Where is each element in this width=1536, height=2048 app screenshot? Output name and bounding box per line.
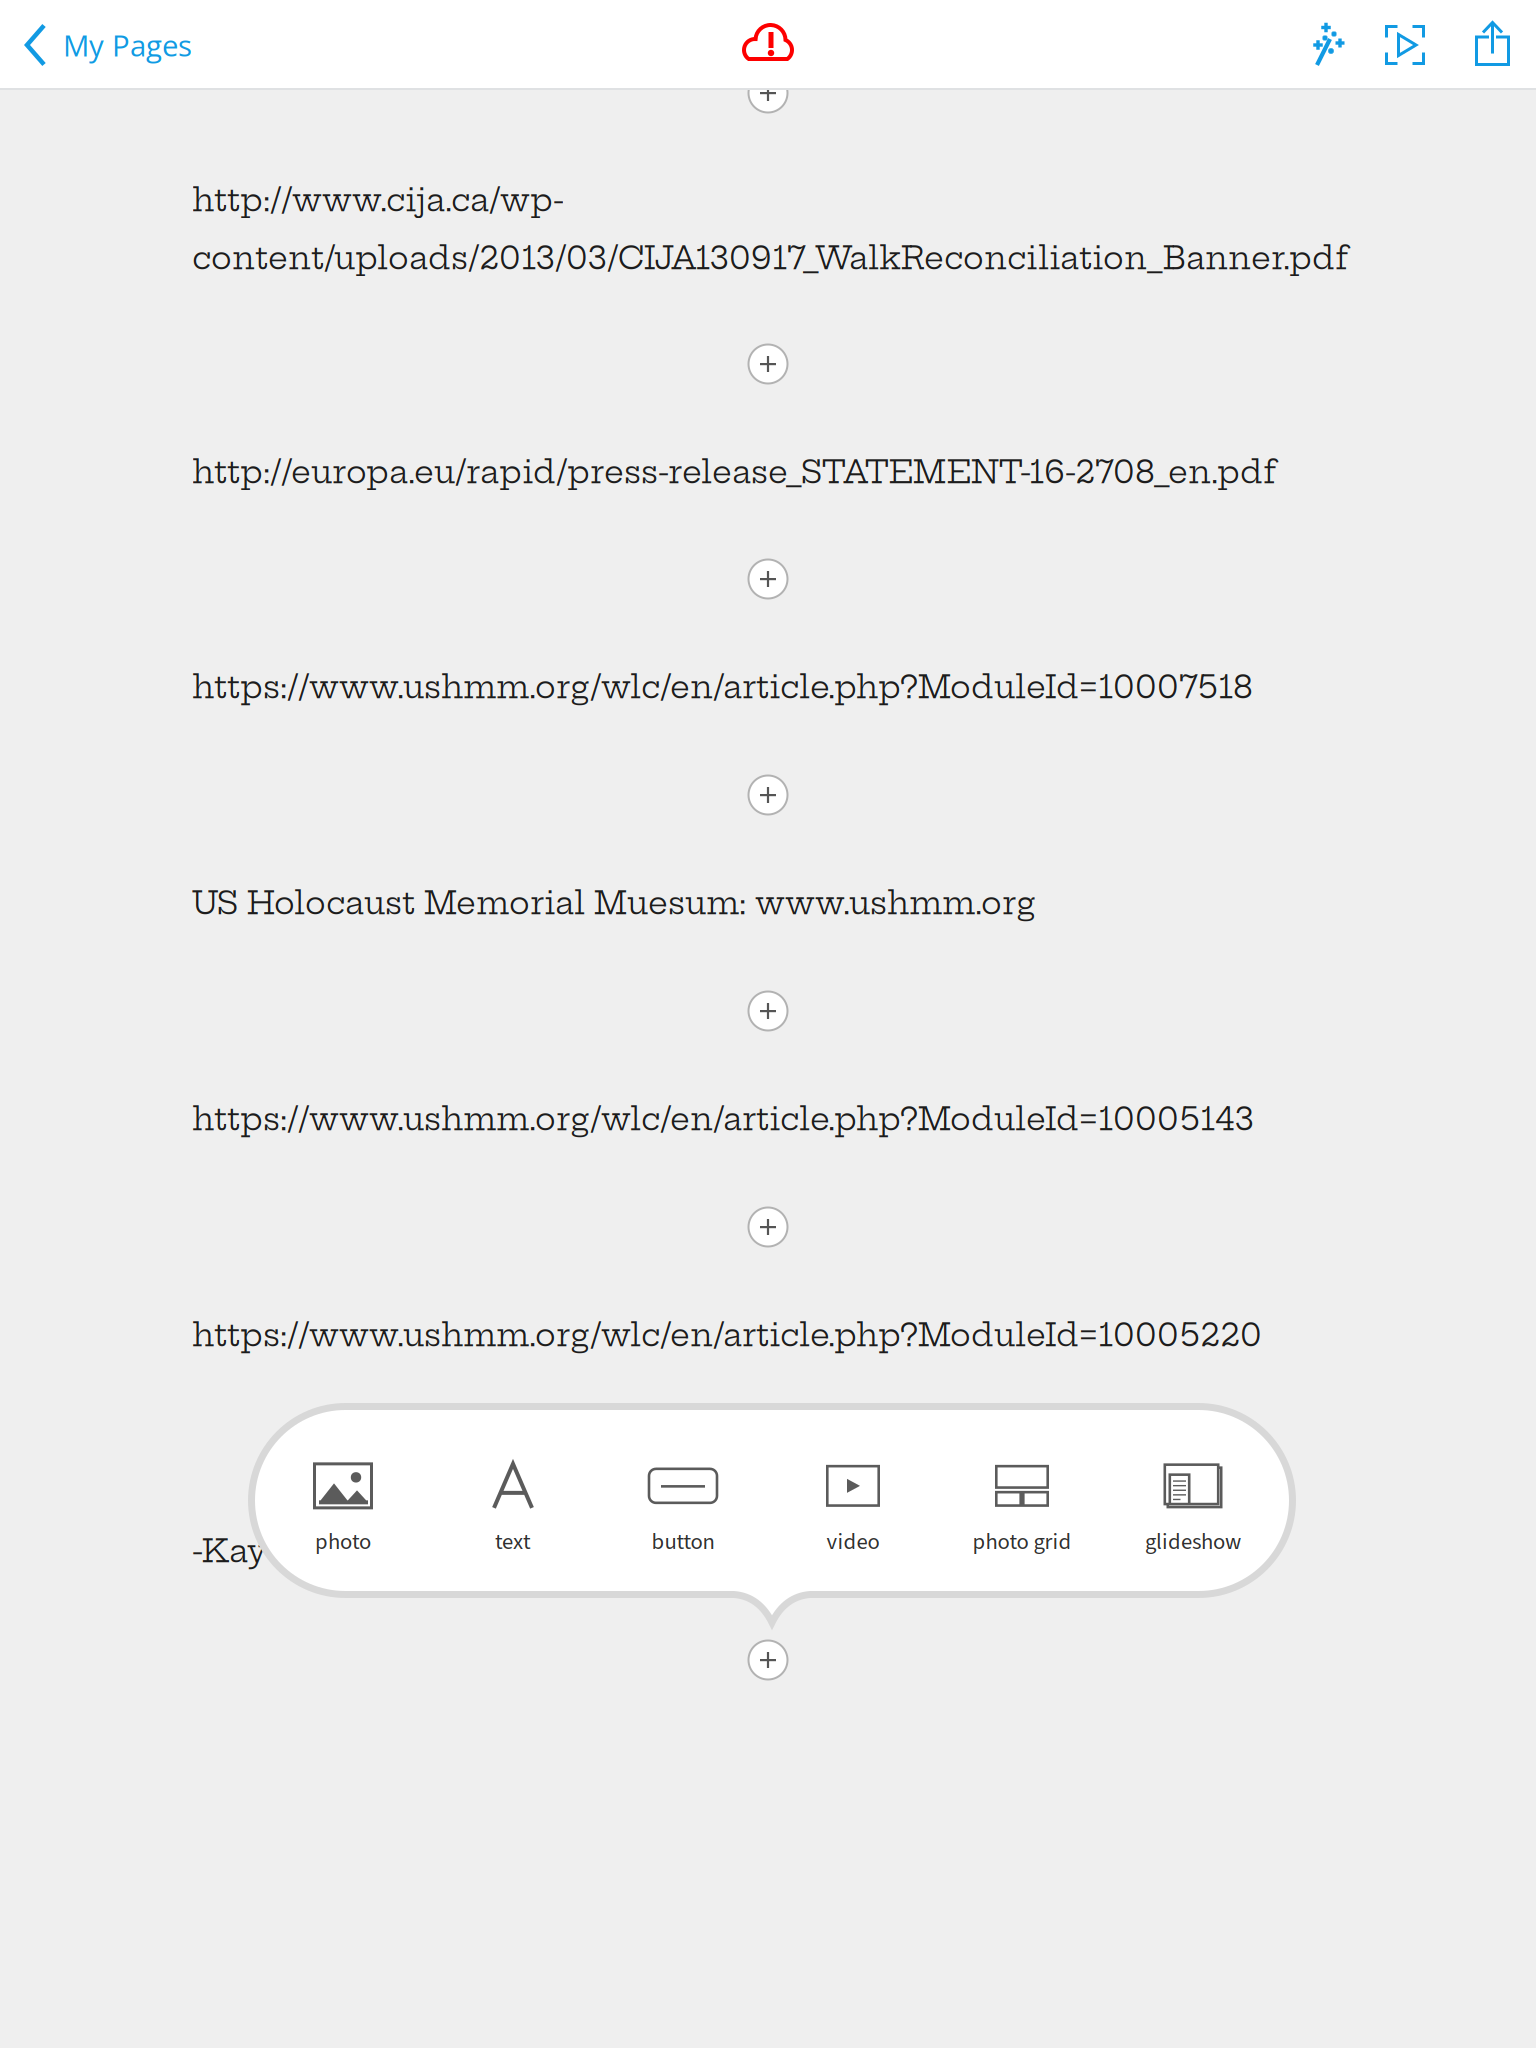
button[interactable]: Insert block [748, 344, 787, 383]
button[interactable]: video [778, 1453, 928, 1563]
button[interactable]: text [438, 1453, 588, 1563]
staticText: US Holocaust Memorial Muesum: www.ushmm.… [192, 884, 1035, 922]
button[interactable]: My Pages [24, 0, 254, 90]
button[interactable]: Preview [1366, 3, 1444, 87]
staticText: http://www.cija.ca/wp- [192, 181, 564, 219]
button[interactable]: Share [1453, 0, 1531, 84]
button[interactable]: Insert block [748, 991, 787, 1030]
button[interactable]: button [608, 1453, 758, 1563]
staticText: https://www.ushmm.org/wlc/en/article.php… [192, 1316, 1262, 1354]
button[interactable]: Insert block [748, 73, 787, 112]
staticText: https://www.ushmm.org/wlc/en/article.php… [192, 1100, 1254, 1138]
button[interactable]: Theme [1281, 3, 1359, 87]
staticText: https://www.ushmm.org/wlc/en/article.php… [192, 668, 1253, 706]
staticText: My Pages [63, 25, 192, 65]
button[interactable]: glideshow [1118, 1453, 1268, 1563]
staticText: glideshow [1145, 1526, 1241, 1558]
staticText: text [495, 1526, 531, 1558]
button[interactable]: photo grid [947, 1453, 1097, 1563]
staticText: button [651, 1526, 714, 1558]
staticText: photo [315, 1526, 371, 1558]
staticText: video [826, 1526, 879, 1558]
button[interactable]: Insert block [748, 1640, 787, 1679]
button[interactable]: Upload error [734, 9, 802, 73]
button[interactable]: Insert block [748, 559, 787, 598]
button[interactable]: photo [268, 1453, 418, 1563]
staticText: content/uploads/2013/03/CIJA130917_WalkR… [192, 239, 1349, 277]
button[interactable]: Insert block [748, 775, 787, 814]
staticText: http://europa.eu/rapid/press-release_STA… [192, 453, 1277, 491]
button[interactable]: Insert block [748, 1207, 787, 1246]
staticText: photo grid [972, 1526, 1071, 1558]
staticText: -Kay Silver [192, 1532, 371, 1570]
